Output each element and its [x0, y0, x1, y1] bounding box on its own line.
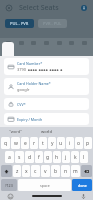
staticText: ?123: [5, 183, 13, 188]
button[interactable]: Emoji: [6, 192, 14, 200]
button[interactable]: Close: [4, 3, 14, 13]
button[interactable]: o: [75, 137, 83, 149]
staticText: y: [51, 140, 54, 147]
button[interactable]: Backspace: [81, 165, 92, 177]
button[interactable]: Seat: [6, 41, 11, 45]
button[interactable]: a: [5, 151, 14, 163]
staticText: "word": [9, 129, 22, 134]
staticText: u: [59, 140, 63, 147]
staticText: n: [64, 168, 68, 175]
staticText: space: [40, 183, 50, 188]
staticText: r: [33, 140, 36, 147]
button[interactable]: y: [48, 137, 56, 149]
button[interactable]: Card Holder Name*: [4, 78, 89, 95]
button[interactable]: ?123: [1, 179, 17, 191]
staticText: PUL - PVR: [10, 21, 29, 26]
button[interactable]: n: [61, 165, 70, 177]
staticText: v: [44, 168, 47, 175]
button[interactable]: f: [35, 151, 43, 163]
button[interactable]: c: [31, 165, 40, 177]
button[interactable]: m: [71, 165, 80, 177]
button[interactable]: Shift: [1, 165, 12, 177]
button[interactable]: CVV*: [4, 98, 89, 110]
staticText: k: [74, 154, 77, 161]
button[interactable]: x: [22, 165, 30, 177]
button[interactable]: b: [51, 165, 60, 177]
button[interactable]: d: [25, 151, 34, 163]
button[interactable]: i: [66, 137, 74, 149]
staticText: world: [41, 129, 52, 134]
staticText: Select Seats: [19, 3, 59, 13]
button[interactable]: j: [62, 151, 70, 163]
staticText: p: [86, 140, 90, 147]
staticText: f: [38, 154, 40, 161]
staticText: s: [18, 154, 21, 161]
button[interactable]: q: [1, 137, 10, 149]
button[interactable]: r: [30, 137, 38, 149]
button[interactable]: h: [53, 151, 61, 163]
staticText: x: [25, 168, 28, 175]
button[interactable]: u: [57, 137, 65, 149]
staticText: h: [55, 154, 59, 161]
button[interactable]: w: [11, 137, 20, 149]
button[interactable]: t: [39, 137, 47, 149]
button[interactable]: PUL - PVR: [10, 21, 29, 26]
button[interactable]: s: [15, 151, 24, 163]
button[interactable]: "word": [0, 127, 31, 136]
button[interactable]: p: [84, 137, 92, 149]
button[interactable]: z: [13, 165, 21, 177]
staticText: PVR - PUL: [43, 21, 62, 26]
staticText: c: [34, 168, 37, 175]
staticText: a: [8, 154, 11, 161]
staticText: Card Holder Name*: [17, 81, 51, 86]
staticText: 3790: [17, 67, 27, 72]
button[interactable]: Expiry / Month: [4, 113, 89, 125]
button[interactable]: Card Number*: [4, 58, 89, 75]
staticText: t: [42, 140, 44, 147]
staticText: Expiry / Month: [17, 117, 43, 122]
staticText: googlr: [17, 87, 30, 92]
staticText: CVV*: [17, 102, 26, 107]
staticText: d: [28, 154, 32, 161]
button[interactable]: g: [44, 151, 52, 163]
button[interactable]: Voice input: [79, 192, 87, 200]
staticText: w: [14, 140, 18, 147]
button[interactable]: done: [72, 179, 92, 191]
staticText: e: [24, 140, 27, 147]
staticText: g: [46, 154, 50, 161]
button[interactable]: PVR - PUL: [43, 21, 62, 26]
button[interactable]: l: [80, 151, 88, 163]
staticText: done: [78, 183, 87, 188]
button[interactable]: e: [21, 137, 29, 149]
staticText: m: [73, 168, 78, 175]
button[interactable]: world: [31, 127, 62, 136]
button[interactable]: v: [41, 165, 50, 177]
staticText: l: [83, 154, 85, 161]
staticText: i: [69, 140, 71, 147]
staticText: b: [54, 168, 58, 175]
staticText: o: [77, 140, 81, 147]
staticText: Card Number*: [17, 61, 43, 66]
button[interactable]: Info: [79, 3, 89, 13]
button[interactable]: k: [71, 151, 79, 163]
button[interactable]: space: [18, 179, 71, 191]
staticText: z: [16, 168, 19, 175]
staticText: q: [4, 140, 8, 147]
staticText: j: [65, 154, 67, 161]
